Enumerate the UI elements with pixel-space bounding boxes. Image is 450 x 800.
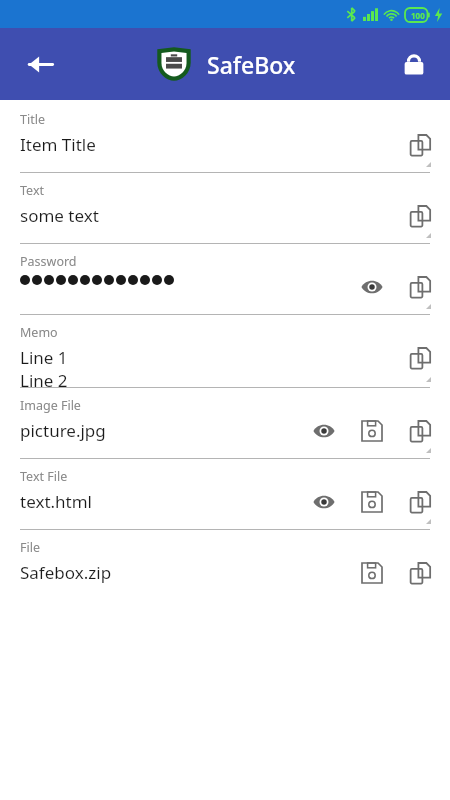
staticText: Line 2 [20,369,68,387]
staticText: Text File [20,468,68,485]
button[interactable]: Title [0,102,450,172]
staticText: Image File [20,397,81,414]
staticText: Item Title [20,133,96,156]
button[interactable]: Memo [0,315,450,387]
button[interactable]: Text File [0,459,450,529]
button[interactable]: Save File [355,556,389,590]
button[interactable]: File [0,530,450,600]
button[interactable]: Copy Text File [403,485,437,519]
staticText: some text [20,204,99,227]
staticText: text.html [20,490,92,513]
button[interactable]: Text [0,173,450,243]
button[interactable]: Show Text File [307,485,341,519]
button[interactable]: Image File [0,388,450,458]
staticText: SafeBox [207,49,296,80]
staticText: Safebox.zip [20,561,112,584]
staticText: 100 [411,10,425,21]
button[interactable]: Password [0,244,450,314]
button[interactable]: Show Image File [307,414,341,448]
button[interactable]: Save Text File [355,485,389,519]
button[interactable]: Copy Password [403,270,437,304]
staticText: Memo [20,324,58,341]
button[interactable]: Copy Memo [403,341,437,375]
staticText: Title [20,111,45,128]
button[interactable]: Copy Title [403,128,437,162]
staticText: Line 1 [20,346,68,369]
staticText: picture.jpg [20,419,106,442]
button[interactable]: Back [18,42,62,86]
staticText: File [20,539,40,556]
button[interactable]: Copy Text [403,199,437,233]
staticText: Text [20,182,45,199]
button[interactable]: Lock [392,42,436,86]
staticText: Password [20,253,77,270]
button[interactable]: Copy Image File [403,414,437,448]
button[interactable]: Save Image File [355,414,389,448]
button[interactable]: Show Password [355,270,389,304]
button[interactable]: Copy File [403,556,437,590]
